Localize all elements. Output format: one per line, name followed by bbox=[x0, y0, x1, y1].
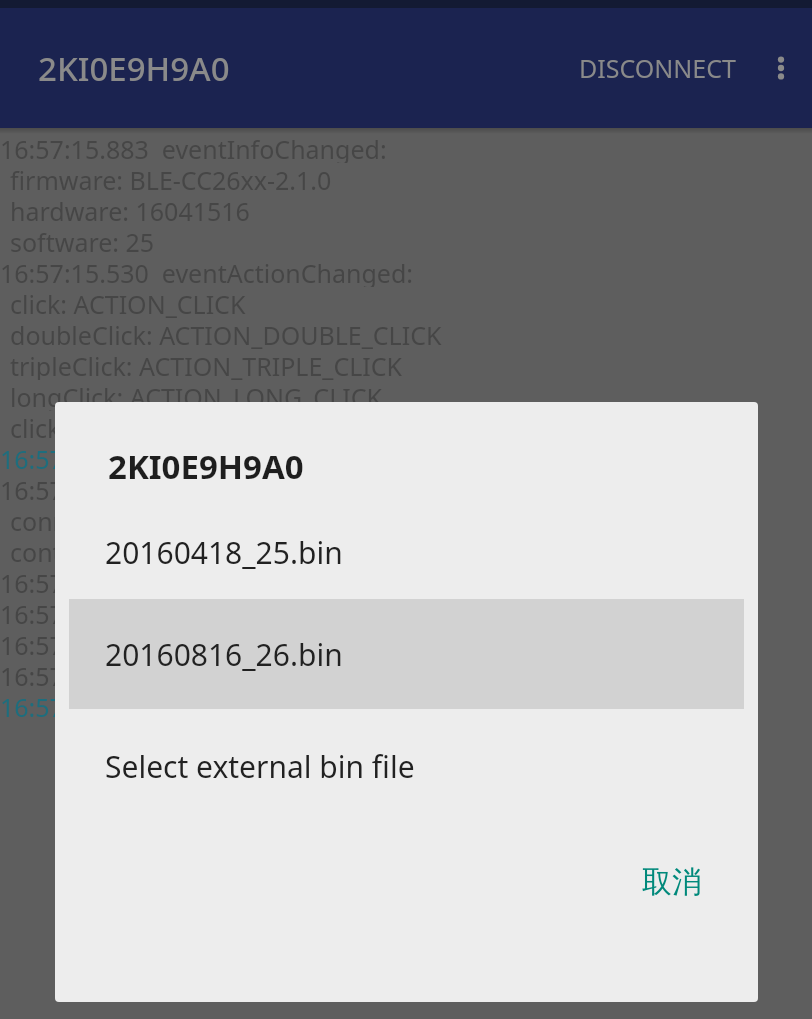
staticText: firmware: BLE-CC26xx-2.1.0 bbox=[10, 163, 332, 194]
staticText: software: 25 bbox=[10, 225, 155, 256]
staticText: 16:57:12.880 scan stopped bbox=[0, 659, 319, 690]
button[interactable]: Select external bin file bbox=[55, 739, 758, 794]
button[interactable]: 20160418_25.bin bbox=[55, 525, 758, 580]
staticText: Select external bin file bbox=[105, 746, 415, 787]
staticText: control service found bbox=[10, 535, 258, 566]
staticText: connection service found bbox=[10, 504, 305, 535]
staticText: 2KI0E9H9A0 bbox=[38, 46, 230, 91]
staticText: 20160816_26.bin bbox=[105, 634, 343, 675]
staticText: 16:57:14.220 discovering services bbox=[0, 566, 397, 597]
button[interactable]: DISCONNECT bbox=[565, 33, 750, 103]
staticText: 取消 bbox=[642, 863, 702, 901]
staticText: tripleClick: ACTION_TRIPLE_CLICK bbox=[10, 349, 403, 380]
staticText: doubleClick: ACTION_DOUBLE_CLICK bbox=[10, 318, 442, 349]
button[interactable]: More options bbox=[750, 37, 812, 99]
staticText: 16:57:13.990 gatt connected bbox=[0, 597, 339, 628]
staticText: longClick: ACTION_LONG_CLICK bbox=[10, 380, 383, 411]
button[interactable]: 20160816_26.bin bbox=[69, 599, 744, 709]
staticText: 16:57:15.530 eventActionChanged: bbox=[0, 256, 413, 287]
staticText: DISCONNECT bbox=[579, 51, 736, 85]
staticText: 16:57:13.440 connecting to device bbox=[0, 628, 404, 659]
button[interactable]: 取消 bbox=[624, 853, 720, 911]
staticText: 2KI0E9H9A0 bbox=[108, 444, 304, 489]
staticText: 16:57:12.330 device selected bbox=[0, 690, 340, 721]
staticText: 16:57:14.870 eventServiceChanged: bbox=[0, 473, 423, 504]
staticText: 16:57:15.883 eventInfoChanged: bbox=[0, 132, 387, 163]
staticText: clickRelease: ACTION_CLICK_RELEASE bbox=[10, 411, 447, 442]
staticText: 20160418_25.bin bbox=[105, 532, 343, 573]
staticText: click: ACTION_CLICK bbox=[10, 287, 246, 318]
staticText: 16:57:14.980 connected bbox=[0, 442, 285, 473]
staticText: hardware: 16041516 bbox=[10, 194, 250, 225]
